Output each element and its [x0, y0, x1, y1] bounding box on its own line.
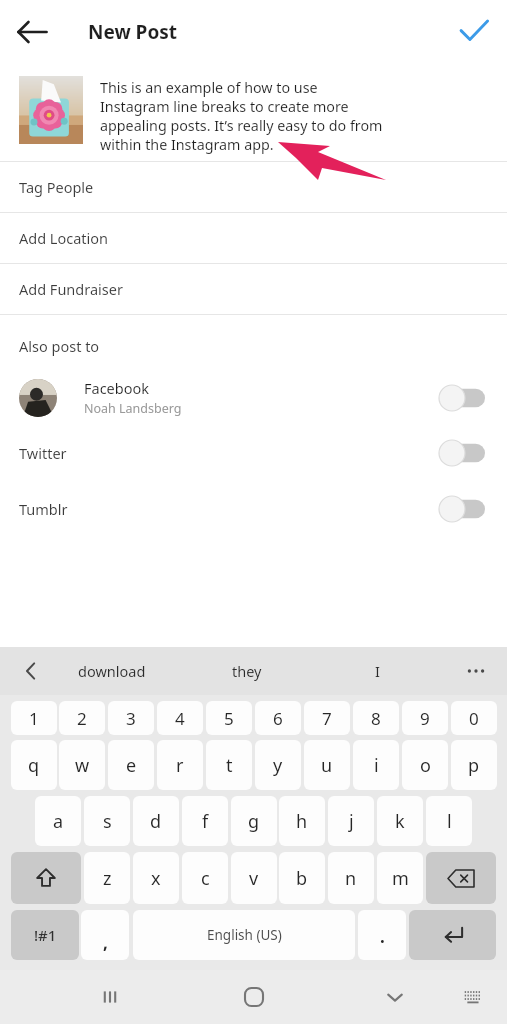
staticText: n [345, 866, 357, 891]
staticText: !#1 [34, 925, 57, 945]
staticText: 5 [224, 707, 234, 730]
staticText: Facebook [84, 378, 150, 398]
button[interactable]: u [304, 740, 350, 790]
staticText: k [395, 809, 405, 834]
button[interactable]: n [328, 852, 374, 904]
button[interactable]: English (US) [133, 910, 355, 960]
button[interactable]: More options [459, 654, 493, 688]
staticText: Add Location [19, 228, 109, 248]
button[interactable]: Tumblr [0, 481, 507, 537]
staticText: f [202, 809, 209, 834]
button[interactable]: j [328, 796, 374, 846]
staticText: a [53, 809, 64, 834]
button[interactable]: h [279, 796, 325, 846]
button[interactable]: . [358, 910, 406, 960]
staticText: s [103, 809, 112, 834]
button[interactable]: p [451, 740, 497, 790]
button[interactable]: Keyboard layout [455, 978, 493, 1016]
staticText: 7 [322, 707, 332, 730]
button[interactable]: z [84, 852, 130, 904]
button[interactable]: Enter [409, 910, 496, 960]
staticText: o [420, 753, 431, 778]
staticText: u [321, 753, 333, 778]
staticText: c [201, 866, 210, 891]
button[interactable]: Add Fundraiser [0, 264, 507, 314]
staticText: l [447, 809, 452, 834]
button[interactable]: Home [231, 974, 277, 1020]
button[interactable]: w [59, 740, 105, 790]
staticText: Add Fundraiser [19, 279, 123, 299]
button[interactable]: y [255, 740, 301, 790]
button[interactable]: Toggle [439, 440, 485, 466]
button[interactable]: v [231, 852, 277, 904]
button[interactable]: 1 [11, 701, 57, 735]
button[interactable]: 5 [206, 701, 252, 735]
button[interactable]: download [78, 661, 146, 681]
button[interactable]: x [133, 852, 179, 904]
staticText: Tumblr [19, 499, 68, 519]
button[interactable]: q [11, 740, 57, 790]
button[interactable]: Facebook [0, 370, 507, 425]
button[interactable]: , [81, 910, 129, 960]
button[interactable]: Backspace [426, 852, 496, 904]
staticText: m [392, 866, 409, 891]
button[interactable]: 7 [304, 701, 350, 735]
button[interactable]: a [35, 796, 81, 846]
staticText: . [380, 925, 385, 948]
button[interactable]: Add Location [0, 213, 507, 263]
button[interactable]: b [279, 852, 325, 904]
button[interactable]: 6 [255, 701, 301, 735]
staticText: y [273, 753, 283, 778]
staticText: Tag People [19, 177, 94, 197]
button[interactable]: t [206, 740, 252, 790]
staticText: This is an example of how to use Instagr… [100, 78, 390, 154]
button[interactable]: l [426, 796, 472, 846]
staticText: v [249, 866, 259, 891]
button[interactable]: Hide keyboard [373, 975, 417, 1019]
staticText: 6 [273, 707, 283, 730]
button[interactable]: 4 [157, 701, 203, 735]
staticText: i [374, 753, 379, 778]
staticText: , [103, 931, 108, 954]
button[interactable]: e [108, 740, 154, 790]
button[interactable]: m [377, 852, 423, 904]
staticText: English (US) [207, 926, 282, 944]
staticText: p [468, 753, 480, 778]
button[interactable]: 0 [451, 701, 497, 735]
staticText: g [248, 809, 260, 834]
staticText: q [28, 753, 40, 778]
button[interactable]: Previous suggestions [14, 654, 48, 688]
staticText: 2 [77, 707, 87, 730]
button[interactable]: Share post [449, 7, 499, 57]
button[interactable]: Toggle [439, 385, 485, 411]
button[interactable]: 9 [402, 701, 448, 735]
button[interactable]: they [232, 661, 262, 681]
staticText: 8 [371, 707, 381, 730]
staticText: h [296, 809, 308, 834]
button[interactable]: Shift [11, 852, 81, 904]
button[interactable]: I [375, 661, 380, 681]
staticText: x [151, 866, 161, 891]
button[interactable]: d [133, 796, 179, 846]
button[interactable]: 2 [59, 701, 105, 735]
button[interactable]: s [84, 796, 130, 846]
button[interactable]: Toggle [439, 496, 485, 522]
staticText: Also post to [19, 336, 100, 356]
button[interactable]: !#1 [11, 910, 79, 960]
button[interactable]: i [353, 740, 399, 790]
button[interactable]: 3 [108, 701, 154, 735]
button[interactable]: Recent apps [88, 975, 132, 1019]
staticText: 1 [29, 707, 39, 730]
staticText: 3 [126, 707, 136, 730]
button[interactable]: g [231, 796, 277, 846]
button[interactable]: Back [6, 6, 58, 58]
button[interactable]: f [182, 796, 228, 846]
button[interactable]: 8 [353, 701, 399, 735]
button[interactable]: Tag People [0, 162, 507, 212]
button[interactable]: o [402, 740, 448, 790]
button[interactable]: Twitter [0, 425, 507, 481]
button[interactable]: c [182, 852, 228, 904]
button[interactable]: r [157, 740, 203, 790]
staticText: 4 [175, 707, 185, 730]
button[interactable]: k [377, 796, 423, 846]
